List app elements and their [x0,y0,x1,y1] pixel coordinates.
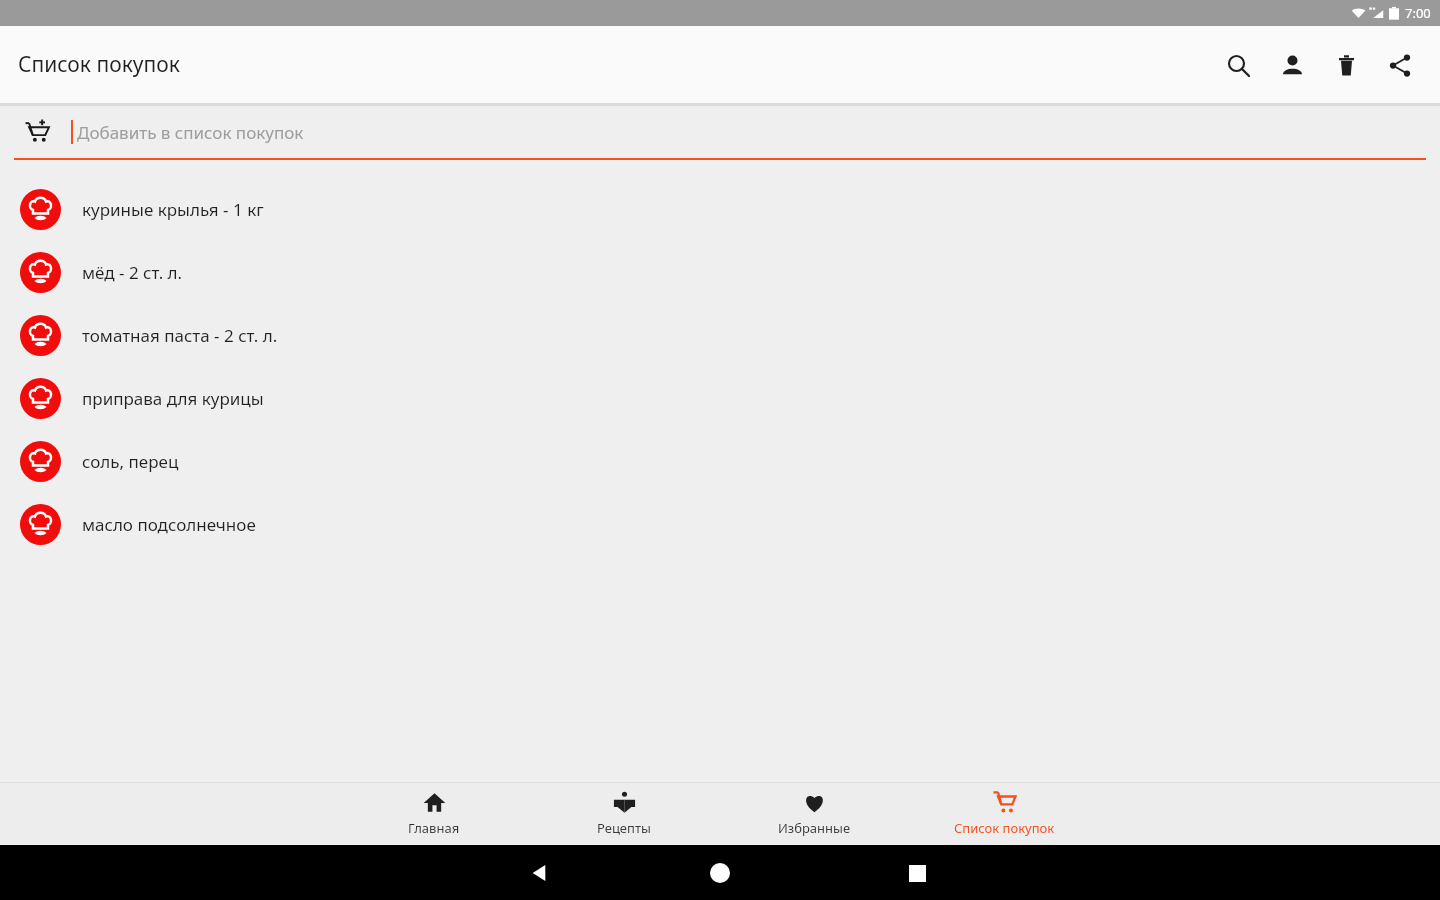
staticText: Избранные [778,819,851,837]
button[interactable]: мёд - 2 ст. л. [0,241,1440,304]
staticText: соль, перец [82,450,179,473]
button[interactable]: Delete [1319,38,1373,92]
button[interactable]: Избранные [719,783,909,845]
button[interactable]: куриные крылья - 1 кг [0,178,1440,241]
staticText: куриные крылья - 1 кг [82,198,264,221]
button[interactable]: Search [1211,38,1265,92]
button[interactable]: Account [1265,38,1319,92]
staticText: мёд - 2 ст. л. [82,261,183,284]
button[interactable]: масло подсолнечное [0,493,1440,556]
staticText: Главная [408,819,460,837]
button[interactable]: приправа для курицы [0,367,1440,430]
staticText: Список покупок [954,819,1055,837]
button[interactable]: Список покупок [909,783,1099,845]
button[interactable]: Recents [896,852,938,894]
staticText: Рецепты [597,819,651,837]
button[interactable]: Главная [339,783,529,845]
staticText: 7:00 [1405,4,1431,22]
button[interactable]: Рецепты [529,783,719,845]
staticText: Добавить в список покупок [77,121,304,144]
button[interactable]: Share [1373,38,1427,92]
staticText: Список покупок [18,50,180,79]
staticText: приправа для курицы [82,387,264,410]
button[interactable]: Добавить в список покупок [0,106,1440,158]
staticText: томатная паста - 2 ст. л. [82,324,278,347]
button[interactable]: Back [518,852,560,894]
button[interactable]: томатная паста - 2 ст. л. [0,304,1440,367]
staticText: масло подсолнечное [82,513,256,536]
button[interactable]: соль, перец [0,430,1440,493]
button[interactable]: Home [699,852,741,894]
